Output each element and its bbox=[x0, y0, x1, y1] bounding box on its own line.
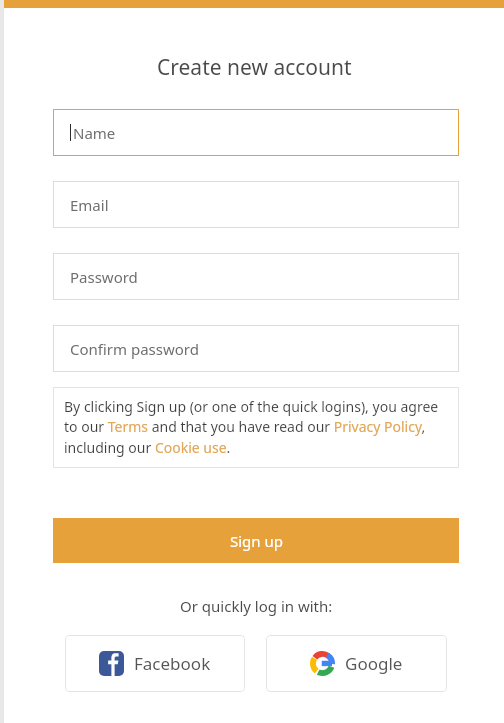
staticText: Create new account bbox=[157, 53, 352, 82]
button[interactable]: Facebook bbox=[65, 635, 245, 692]
other: Facebook bbox=[99, 651, 124, 676]
button[interactable]: Sign up bbox=[53, 518, 459, 563]
staticText: Password bbox=[70, 267, 138, 287]
button[interactable]: Password bbox=[53, 253, 459, 300]
staticText: Sign up bbox=[230, 531, 283, 551]
staticText: Or quickly log in with: bbox=[180, 596, 333, 616]
button[interactable]: By clicking Sign up (or one of the quick… bbox=[53, 387, 459, 468]
staticText: Confirm password bbox=[70, 339, 199, 359]
other: Google bbox=[310, 651, 335, 676]
staticText: Google bbox=[345, 652, 403, 675]
staticText: Facebook bbox=[134, 652, 211, 675]
button[interactable]: Google bbox=[266, 635, 447, 692]
button[interactable]: Confirm password bbox=[53, 325, 459, 372]
staticText: Email bbox=[70, 195, 109, 215]
staticText: By clicking Sign up (or one of the quick… bbox=[64, 397, 450, 458]
button[interactable]: Name bbox=[53, 109, 459, 156]
staticText: Name bbox=[73, 123, 116, 143]
button[interactable]: Email bbox=[53, 181, 459, 228]
